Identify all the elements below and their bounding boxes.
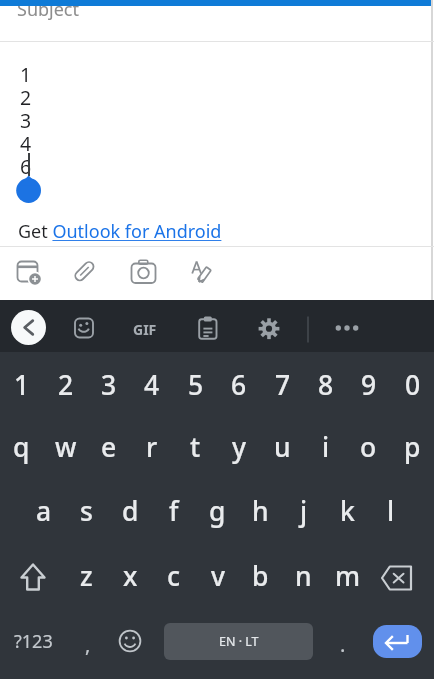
- staticText: 1: [20, 61, 32, 88]
- staticText: .: [340, 631, 346, 658]
- staticText: 4: [20, 130, 32, 157]
- staticText: w: [55, 429, 77, 465]
- staticText: k: [340, 493, 355, 529]
- button[interactable]: [112, 620, 150, 662]
- staticText: d: [122, 493, 139, 529]
- button[interactable]: g: [196, 479, 239, 543]
- staticText: 2: [58, 367, 74, 403]
- staticText: 8: [318, 367, 334, 403]
- staticText: m: [335, 558, 361, 594]
- button[interactable]: [6, 547, 60, 611]
- staticText: o: [360, 429, 377, 465]
- button[interactable]: [11, 310, 46, 345]
- button[interactable]: i: [304, 415, 347, 479]
- button[interactable]: q: [0, 415, 43, 479]
- button[interactable]: [373, 625, 422, 658]
- button[interactable]: n: [282, 544, 325, 608]
- button[interactable]: Get Outlook for Android: [18, 219, 222, 244]
- staticText: p: [404, 429, 421, 465]
- staticText: q: [13, 429, 30, 465]
- staticText: 2: [20, 84, 32, 111]
- staticText: EN · LT: [219, 633, 259, 650]
- button[interactable]: j: [282, 479, 325, 543]
- staticText: a: [36, 493, 52, 529]
- button[interactable]: 4: [130, 353, 173, 417]
- staticText: g: [209, 493, 226, 529]
- staticText: y: [232, 429, 246, 465]
- button[interactable]: k: [326, 479, 369, 543]
- staticText: 9: [361, 367, 377, 403]
- staticText: r: [146, 429, 158, 465]
- button[interactable]: ?123: [4, 609, 62, 673]
- staticText: 1: [14, 367, 30, 403]
- staticText: ?123: [14, 629, 53, 654]
- button[interactable]: 7: [261, 353, 304, 417]
- button[interactable]: [370, 547, 428, 611]
- staticText: s: [80, 493, 93, 529]
- button[interactable]: ,: [71, 619, 105, 669]
- button[interactable]: 5: [174, 353, 217, 417]
- staticText: 3: [20, 107, 32, 134]
- button[interactable]: EN · LT: [164, 623, 313, 660]
- staticText: 4: [144, 367, 160, 403]
- staticText: z: [80, 558, 93, 594]
- button[interactable]: l: [369, 479, 412, 543]
- button[interactable]: u: [261, 415, 304, 479]
- staticText: j: [300, 493, 308, 529]
- button[interactable]: f: [152, 479, 195, 543]
- staticText: l: [387, 493, 395, 529]
- staticText: f: [169, 493, 179, 529]
- button[interactable]: [0, 250, 240, 290]
- button[interactable]: r: [130, 415, 173, 479]
- staticText: h: [252, 493, 269, 529]
- staticText: 3: [101, 367, 117, 403]
- staticText: 6: [20, 153, 32, 180]
- staticText: i: [322, 429, 330, 465]
- button[interactable]: y: [217, 415, 260, 479]
- staticText: Subject: [17, 0, 80, 22]
- staticText: ,: [85, 631, 91, 658]
- button[interactable]: 8: [304, 353, 347, 417]
- button[interactable]: m: [326, 544, 369, 608]
- staticText: n: [295, 558, 312, 594]
- button[interactable]: 0: [391, 353, 434, 417]
- button[interactable]: e: [87, 415, 130, 479]
- staticText: t: [190, 429, 201, 465]
- staticText: v: [211, 558, 225, 594]
- button[interactable]: b: [239, 544, 282, 608]
- button[interactable]: 3: [87, 353, 130, 417]
- button[interactable]: t: [174, 415, 217, 479]
- staticText: x: [123, 558, 138, 594]
- button[interactable]: o: [347, 415, 390, 479]
- button[interactable]: z: [65, 544, 108, 608]
- staticText: GIF: [133, 320, 157, 339]
- button[interactable]: 2: [44, 353, 87, 417]
- button[interactable]: 1: [0, 353, 43, 417]
- button[interactable]: 6: [217, 353, 260, 417]
- staticText: 0: [405, 367, 421, 403]
- staticText: e: [101, 429, 117, 465]
- staticText: 7: [275, 367, 291, 403]
- staticText: b: [252, 558, 269, 594]
- button[interactable]: h: [239, 479, 282, 543]
- button[interactable]: GIF: [120, 309, 170, 349]
- button[interactable]: c: [152, 544, 195, 608]
- button[interactable]: .: [326, 619, 360, 669]
- button[interactable]: x: [109, 544, 152, 608]
- button[interactable]: 9: [347, 353, 390, 417]
- button[interactable]: s: [65, 479, 108, 543]
- button[interactable]: p: [391, 415, 434, 479]
- staticText: u: [274, 429, 291, 465]
- button[interactable]: w: [44, 415, 87, 479]
- staticText: c: [167, 558, 181, 594]
- staticText: 6: [231, 367, 247, 403]
- button[interactable]: d: [109, 479, 152, 543]
- button[interactable]: v: [196, 544, 239, 608]
- staticText: 5: [188, 367, 204, 403]
- button[interactable]: a: [22, 479, 65, 543]
